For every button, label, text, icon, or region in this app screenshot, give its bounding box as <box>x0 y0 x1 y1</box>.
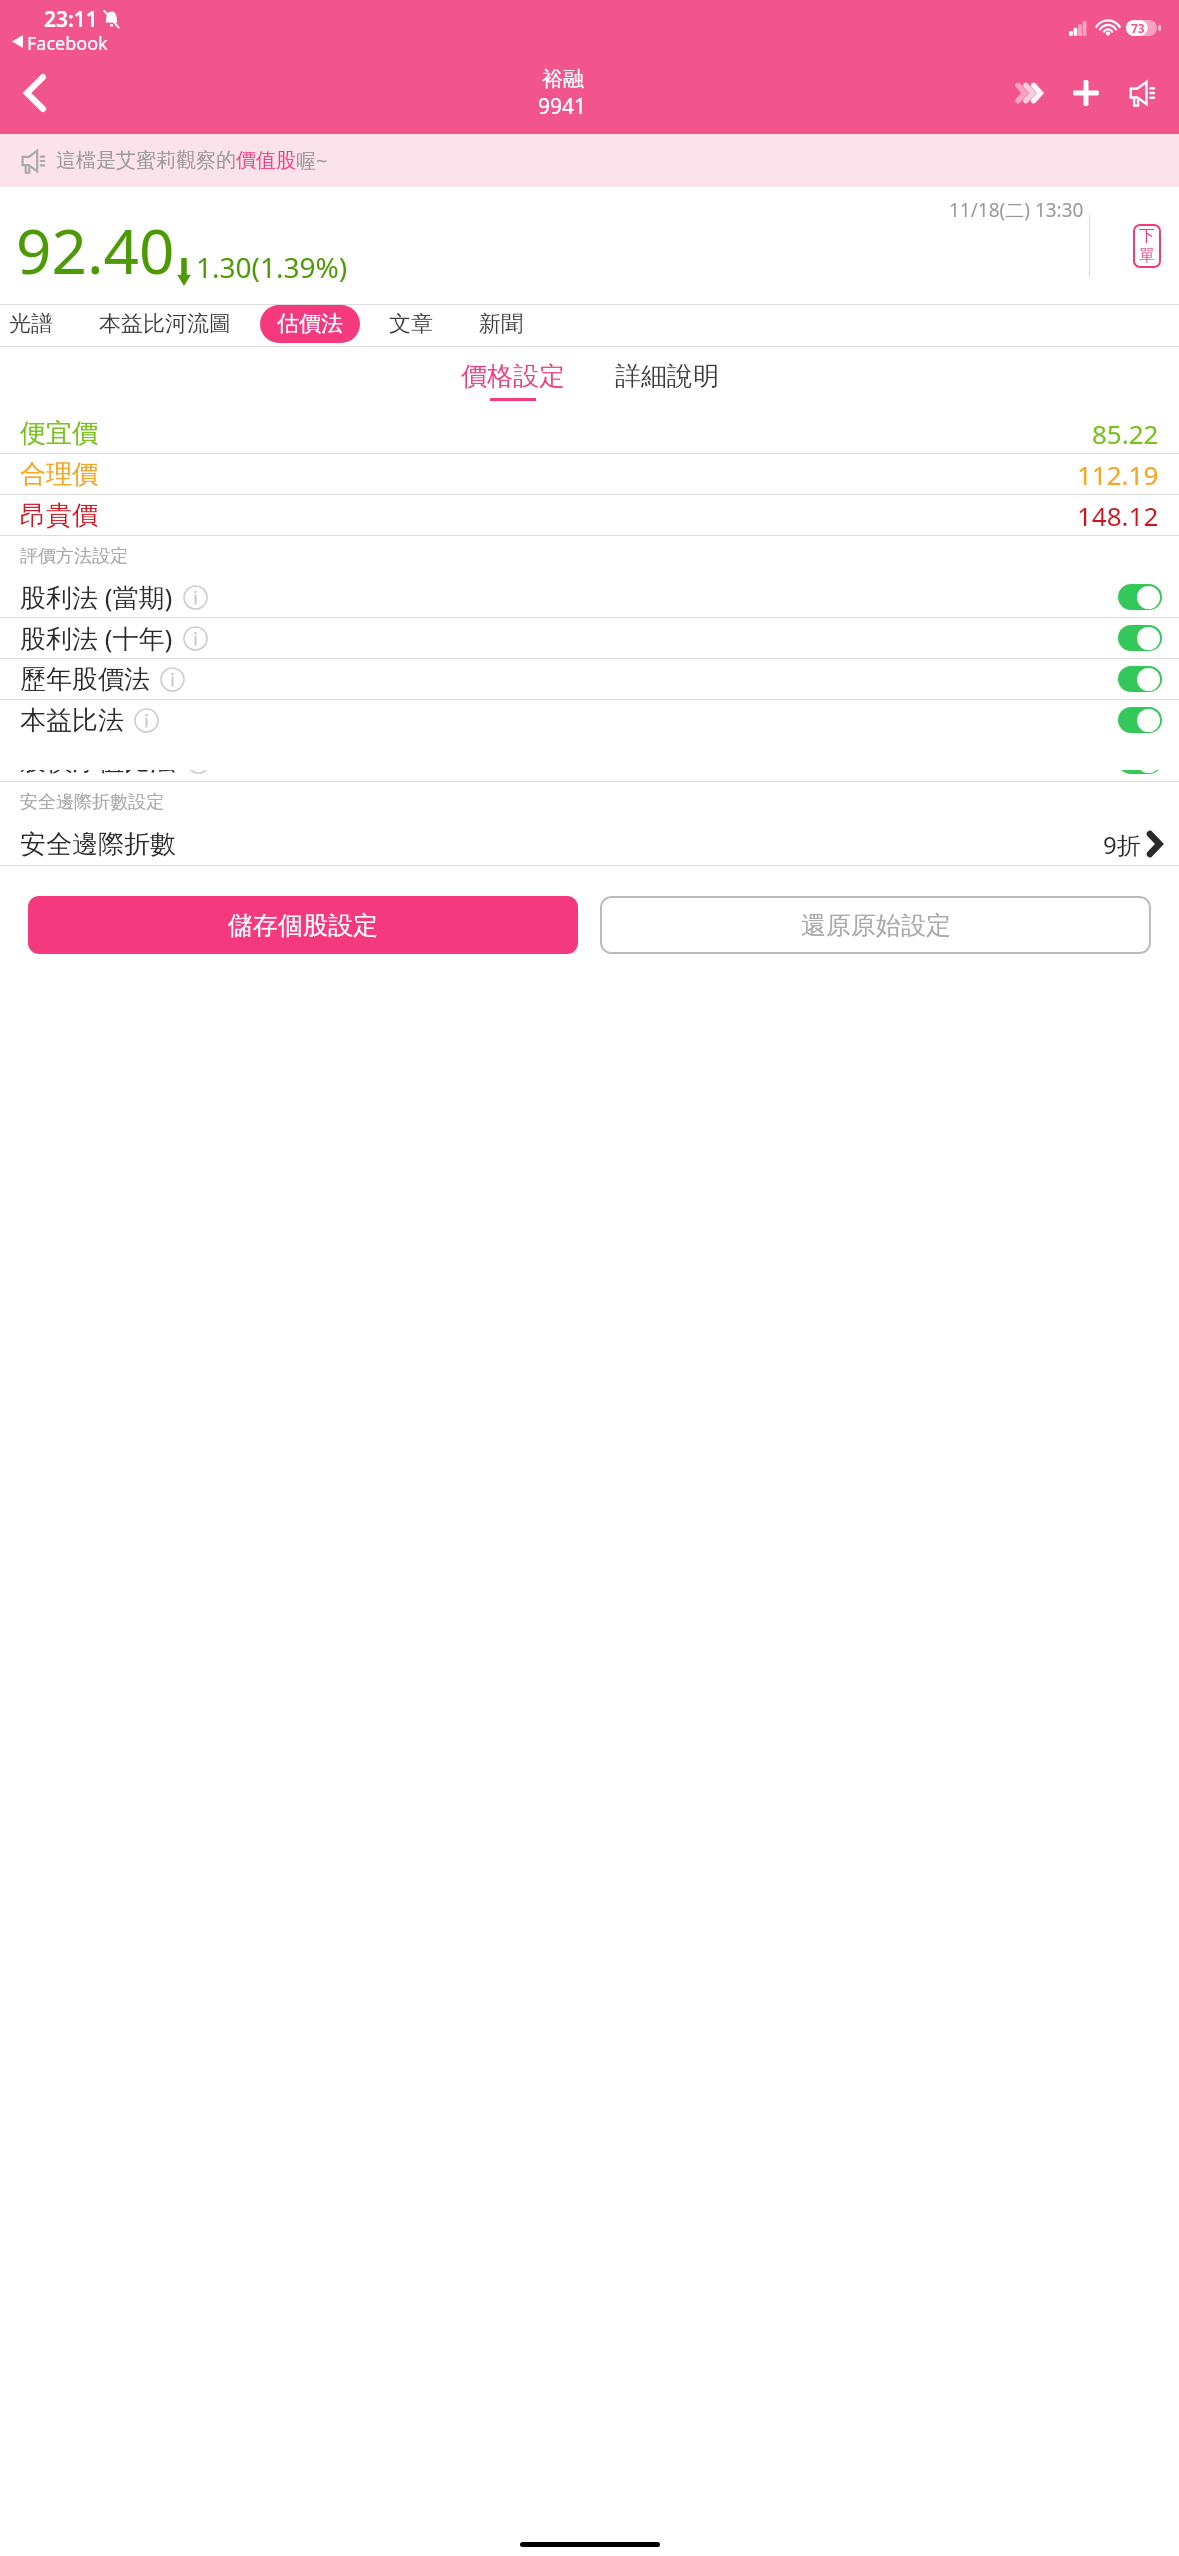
button[interactable]: 股利法 (當期) <box>0 577 1179 617</box>
staticText: 估價法 <box>277 310 343 338</box>
staticText: 光譜 <box>9 310 53 338</box>
staticText: 喔~ <box>296 147 328 174</box>
staticText: 股價淨值比法 <box>20 745 176 778</box>
button[interactable]: Expand <box>1007 70 1053 116</box>
staticText: 還原原始設定 <box>801 910 951 941</box>
staticText: 85.22 <box>1092 416 1159 451</box>
staticText: 9941 <box>538 92 587 121</box>
staticText: 這檔是艾蜜莉觀察的 <box>56 148 236 173</box>
button[interactable]: 下 <box>1133 224 1161 268</box>
staticText: 儲存個股設定 <box>228 910 378 941</box>
staticText: 價值股 <box>236 148 296 173</box>
button[interactable]: 歷年股價法 <box>0 659 1179 699</box>
staticText: 合理價 <box>20 458 98 491</box>
staticText: 11/18(二) 13:30 <box>949 197 1084 223</box>
staticText: 安全邊際折數設定 <box>20 791 164 814</box>
button[interactable]: 股利法 (十年) <box>0 618 1179 658</box>
staticText: 股利法 (十年) <box>20 620 173 656</box>
button[interactable]: Announcements <box>1119 70 1165 116</box>
staticText: Facebook <box>27 31 108 52</box>
staticText: 1.30(1.39%) <box>196 248 348 286</box>
staticText: 112.19 <box>1077 457 1159 492</box>
button[interactable]: Toggle 股利法 (當期) <box>1118 584 1162 610</box>
button[interactable]: Add <box>1063 70 1109 116</box>
staticText: 148.12 <box>1077 498 1159 533</box>
staticText: 文章 <box>389 310 433 338</box>
button[interactable]: 還原原始設定 <box>600 896 1151 954</box>
staticText: 本益比河流圖 <box>99 310 231 338</box>
staticText: 評價方法設定 <box>20 545 128 568</box>
staticText: 92.40 <box>16 208 175 292</box>
staticText: 下 <box>1139 226 1155 246</box>
button[interactable]: 儲存個股設定 <box>28 896 578 954</box>
staticText: 昂貴價 <box>20 499 98 532</box>
button[interactable]: 本益比法 <box>0 700 1179 740</box>
button[interactable]: 便宜價 <box>0 413 1179 453</box>
button[interactable]: 這檔是艾蜜莉觀察的 <box>20 134 1179 187</box>
staticText: 安全邊際折數 <box>20 828 176 861</box>
staticText: 歷年股價法 <box>20 663 150 696</box>
staticText: 價格設定 <box>461 360 565 393</box>
staticText: 73 <box>1131 20 1145 36</box>
staticText: 本益比法 <box>20 704 124 737</box>
staticText: 股利法 (當期) <box>20 579 173 615</box>
staticText: 單 <box>1139 246 1155 266</box>
button[interactable]: Toggle 股利法 (十年) <box>1118 625 1162 651</box>
button[interactable]: Toggle 股價淨值比法 <box>1118 748 1162 774</box>
button[interactable]: 詳細說明 <box>601 358 733 403</box>
staticText: 9折 <box>1103 828 1141 861</box>
button[interactable]: Back <box>8 66 62 120</box>
button[interactable]: 昂貴價 <box>0 495 1179 535</box>
button[interactable]: 合理價 <box>0 454 1179 494</box>
button[interactable]: 新聞 <box>462 305 540 343</box>
button[interactable]: 股價淨值比法 <box>0 741 1179 781</box>
button[interactable]: 安全邊際折數 <box>0 823 1179 865</box>
button[interactable]: 光譜 <box>0 305 70 343</box>
button[interactable]: 價格設定 <box>447 354 579 407</box>
staticText: 新聞 <box>479 310 523 338</box>
button[interactable]: Toggle 歷年股價法 <box>1118 666 1162 692</box>
button[interactable]: 估價法 <box>260 305 360 343</box>
button[interactable]: 本益比河流圖 <box>82 305 248 343</box>
button[interactable]: Toggle 本益比法 <box>1118 707 1162 733</box>
staticText: 23:11 <box>44 5 98 34</box>
staticText: 裕融 <box>542 66 584 92</box>
button[interactable]: 文章 <box>372 305 450 343</box>
staticText: 詳細說明 <box>615 360 719 393</box>
staticText: 便宜價 <box>20 417 98 450</box>
